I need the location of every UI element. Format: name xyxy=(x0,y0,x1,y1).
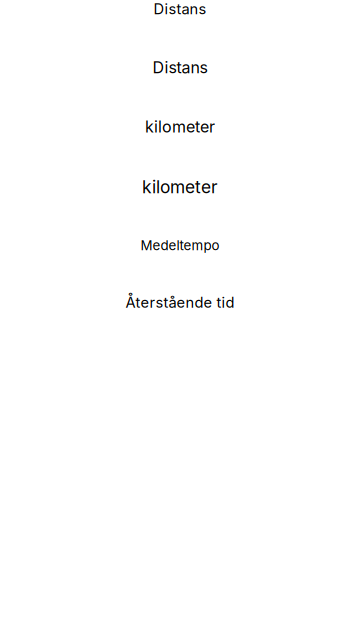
staticText: kilometer xyxy=(142,176,218,197)
staticText: Distans xyxy=(152,58,207,77)
staticText: Medeltempo xyxy=(140,237,219,253)
staticText: kilometer xyxy=(145,117,215,136)
staticText: Distans xyxy=(153,0,206,18)
staticText: Återstående tid xyxy=(125,294,234,311)
